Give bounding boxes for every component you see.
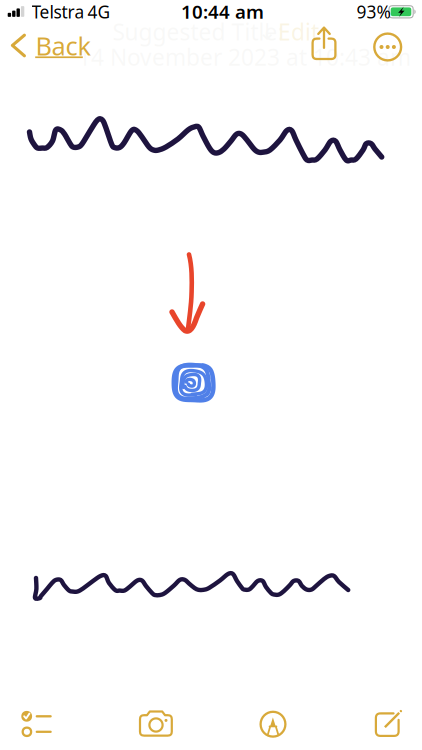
button[interactable] — [0, 25, 92, 69]
staticText: Back — [35, 29, 91, 62]
button[interactable]: Camera — [115, 699, 191, 749]
button[interactable]: More — [366, 25, 410, 69]
staticText: 10:44 am — [181, 0, 264, 24]
staticText: Edit — [278, 17, 319, 47]
button[interactable]: Checklist — [0, 699, 76, 749]
staticText: Suggested Title: — [112, 17, 283, 47]
staticText: 14 November 2023 at 10:43 am — [78, 42, 411, 72]
staticText: ↓ — [257, 19, 276, 45]
staticText: 93% — [356, 0, 390, 23]
button[interactable]: Compose — [346, 699, 422, 749]
staticText: 4G — [87, 0, 110, 23]
staticText: Telstra — [31, 0, 84, 23]
button[interactable]: Share — [322, 25, 366, 69]
button[interactable]: Markup — [231, 699, 307, 749]
